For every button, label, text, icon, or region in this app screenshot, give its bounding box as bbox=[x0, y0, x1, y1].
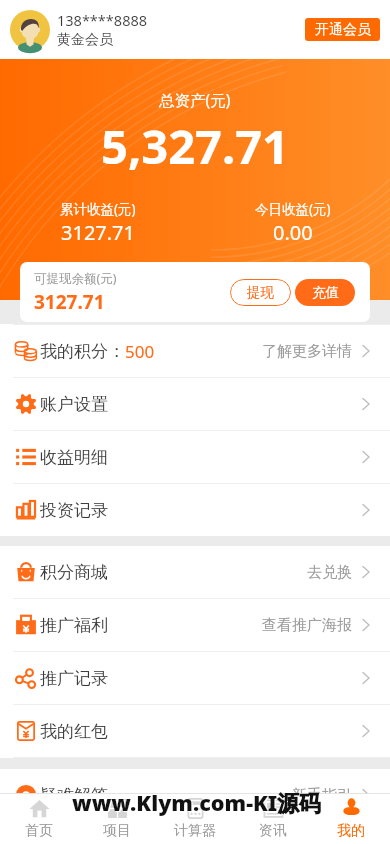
staticText: 3127.71 bbox=[34, 289, 105, 315]
button[interactable]: 投资记录 bbox=[0, 484, 390, 536]
button[interactable]: 我的积分： bbox=[0, 325, 390, 377]
staticText: 积分商城 bbox=[40, 562, 108, 583]
staticText: 疑难解答 bbox=[40, 785, 108, 806]
staticText: 黄金会员 bbox=[57, 31, 113, 49]
button[interactable]: 计算器 bbox=[156, 794, 234, 844]
button[interactable]: 充值 bbox=[295, 279, 355, 306]
staticText: 总资产(元) bbox=[159, 89, 231, 110]
staticText: 去兑换 bbox=[307, 563, 352, 582]
staticText: www.Klym.com-KI源码 bbox=[73, 789, 322, 819]
staticText: 资讯 bbox=[259, 822, 287, 840]
staticText: 3127.71 bbox=[61, 219, 135, 246]
staticText: 138****8888 bbox=[57, 10, 148, 30]
staticText: 我的 bbox=[337, 822, 365, 840]
button[interactable]: 收益明细 bbox=[0, 431, 390, 483]
staticText: 0.00 bbox=[273, 219, 313, 246]
button[interactable]: 开通会员 bbox=[305, 18, 380, 41]
button[interactable]: 项目 bbox=[78, 794, 156, 844]
staticText: 首页 bbox=[25, 822, 53, 840]
staticText: 查看推广海报 bbox=[262, 616, 352, 635]
button[interactable]: 账户设置 bbox=[0, 378, 390, 430]
staticText: 5,327.71 bbox=[101, 114, 289, 178]
staticText: 充值 bbox=[312, 284, 339, 301]
staticText: 新手指引 bbox=[292, 786, 352, 805]
button[interactable]: 积分商城 bbox=[0, 546, 390, 598]
staticText: 项目 bbox=[103, 822, 131, 840]
button[interactable]: 资讯 bbox=[234, 794, 312, 844]
staticText: 提现 bbox=[247, 284, 274, 301]
staticText: 我的积分： bbox=[40, 341, 125, 362]
staticText: 今日收益(元) bbox=[255, 200, 331, 218]
button[interactable]: 我的红包 bbox=[0, 705, 390, 757]
staticText: 投资记录 bbox=[40, 500, 108, 521]
button[interactable]: 我的 bbox=[312, 794, 390, 844]
button[interactable]: 推广记录 bbox=[0, 652, 390, 704]
button[interactable]: 首页 bbox=[0, 794, 78, 844]
staticText: www.Klym.com-KI源码 bbox=[72, 788, 321, 818]
staticText: 可提现余额(元) bbox=[34, 270, 117, 287]
staticText: 了解更多详情 bbox=[262, 342, 352, 361]
staticText: 开通会员 bbox=[315, 21, 371, 39]
staticText: 推广福利 bbox=[40, 615, 108, 636]
staticText: 账户设置 bbox=[40, 394, 108, 415]
staticText: 计算器 bbox=[174, 822, 216, 840]
staticText: 收益明细 bbox=[40, 447, 108, 468]
button[interactable]: 推广福利 bbox=[0, 599, 390, 651]
staticText: 我的红包 bbox=[40, 721, 108, 742]
staticText: 500 bbox=[125, 340, 155, 363]
button[interactable]: 疑难解答 bbox=[0, 769, 390, 821]
staticText: 累计收益(元) bbox=[60, 200, 136, 218]
button[interactable]: 提现 bbox=[230, 279, 291, 306]
staticText: 推广记录 bbox=[40, 668, 108, 689]
